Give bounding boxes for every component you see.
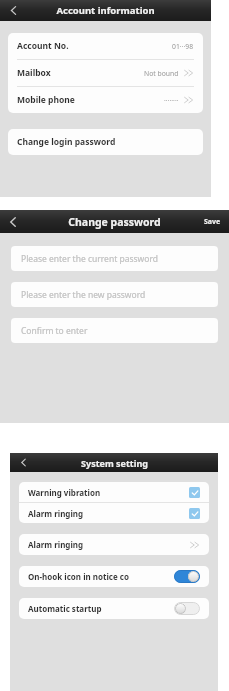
staticText: Please enter the current password [21, 253, 158, 265]
button[interactable]: Switch off [174, 602, 200, 615]
staticText: On-hook icon in notice co [28, 571, 129, 582]
staticText: Warning vibration [28, 487, 101, 498]
button[interactable]: Mailbox [8, 60, 203, 86]
button[interactable]: On-hook icon in notice co [19, 566, 209, 587]
button[interactable]: Back [0, 210, 26, 233]
button[interactable]: Change login password [8, 129, 203, 155]
button[interactable]: Alarm ringing [19, 534, 209, 555]
staticText: Save [204, 217, 221, 227]
button[interactable]: Account No. [8, 33, 203, 59]
button[interactable]: Please enter the current password [11, 246, 218, 271]
staticText: Automatic startup [28, 603, 102, 614]
staticText: Alarm ringing [28, 539, 84, 550]
staticText: 01···98 [172, 42, 194, 51]
button[interactable]: Confirm to enter [11, 318, 218, 343]
staticText: Change login password [17, 136, 116, 148]
staticText: Confirm to enter [21, 325, 88, 337]
button[interactable]: Automatic startup [19, 598, 209, 619]
button[interactable]: Mobile phone [8, 87, 203, 113]
button[interactable]: Save [204, 210, 221, 233]
staticText: Please enter the new password [21, 289, 146, 301]
staticText: Mailbox [17, 67, 51, 79]
button[interactable]: Alarm ringing [19, 503, 209, 523]
staticText: Account information [56, 4, 155, 17]
staticText: Mobile phone [17, 94, 75, 106]
staticText: Account No. [17, 40, 69, 52]
button[interactable]: Back [0, 0, 26, 21]
staticText: System setting [81, 457, 148, 469]
button[interactable]: Switch on [174, 570, 200, 583]
button[interactable]: Please enter the new password [11, 282, 218, 307]
staticText: ········ [164, 96, 179, 105]
staticText: Alarm ringing [28, 508, 84, 519]
staticText: Not bound [144, 69, 179, 78]
staticText: Change password [68, 215, 161, 229]
button[interactable]: Back [10, 453, 36, 472]
button[interactable]: Warning vibration [19, 482, 209, 502]
